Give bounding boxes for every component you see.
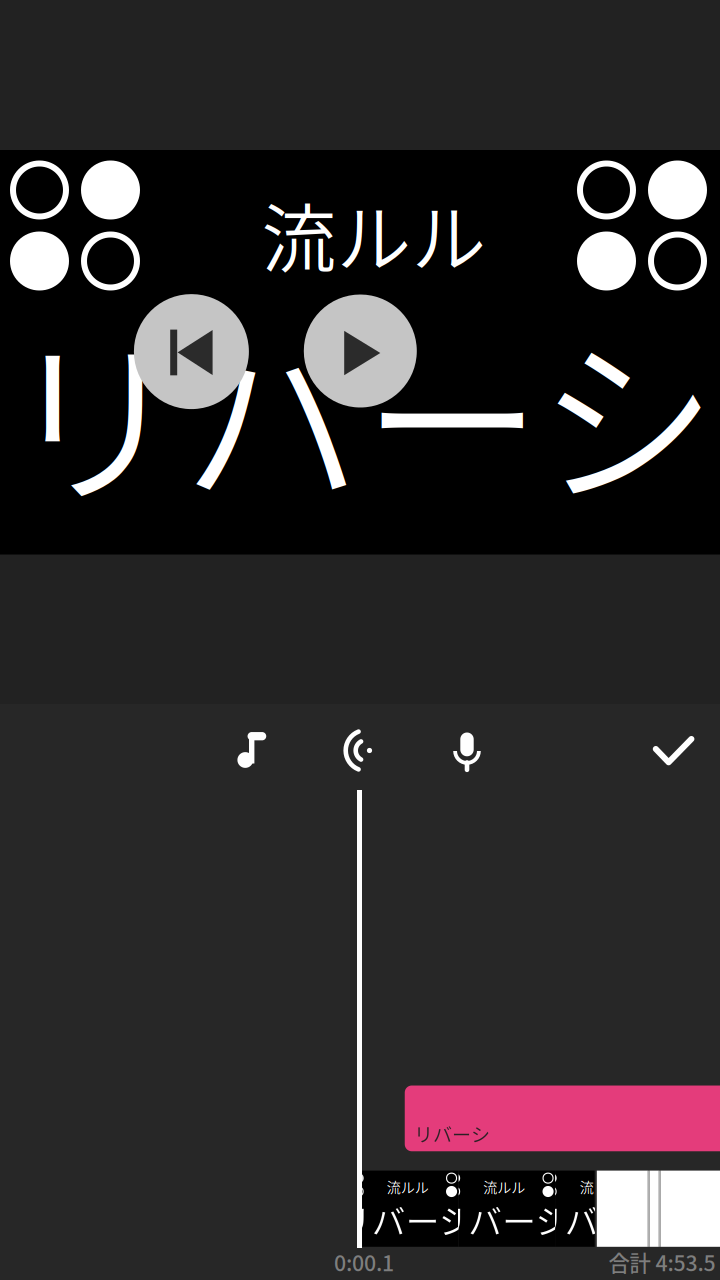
button[interactable]: Done bbox=[649, 726, 697, 774]
button[interactable]: Record voiceover bbox=[443, 728, 491, 776]
staticText: リバーシ bbox=[338, 1195, 473, 1244]
button[interactable]: Music bbox=[228, 726, 276, 774]
button[interactable]: Sound effects bbox=[342, 728, 390, 772]
staticText: リバーシ bbox=[434, 1195, 569, 1244]
staticText: リバーシ bbox=[414, 1120, 490, 1148]
staticText: 流ルル bbox=[483, 1176, 525, 1197]
staticText: リバーシ bbox=[5, 282, 717, 541]
staticText: 流ルル bbox=[580, 1176, 622, 1197]
staticText: 流ルル bbox=[387, 1176, 429, 1197]
button[interactable]: Play bbox=[304, 294, 417, 407]
staticText: 0:00.1 bbox=[334, 1247, 394, 1277]
staticText: 合計 4:53.5 bbox=[608, 1247, 715, 1277]
staticText: リバーシ bbox=[531, 1195, 666, 1244]
staticText: 流ルル bbox=[261, 180, 486, 288]
button[interactable]: Rewind to start bbox=[134, 294, 249, 409]
